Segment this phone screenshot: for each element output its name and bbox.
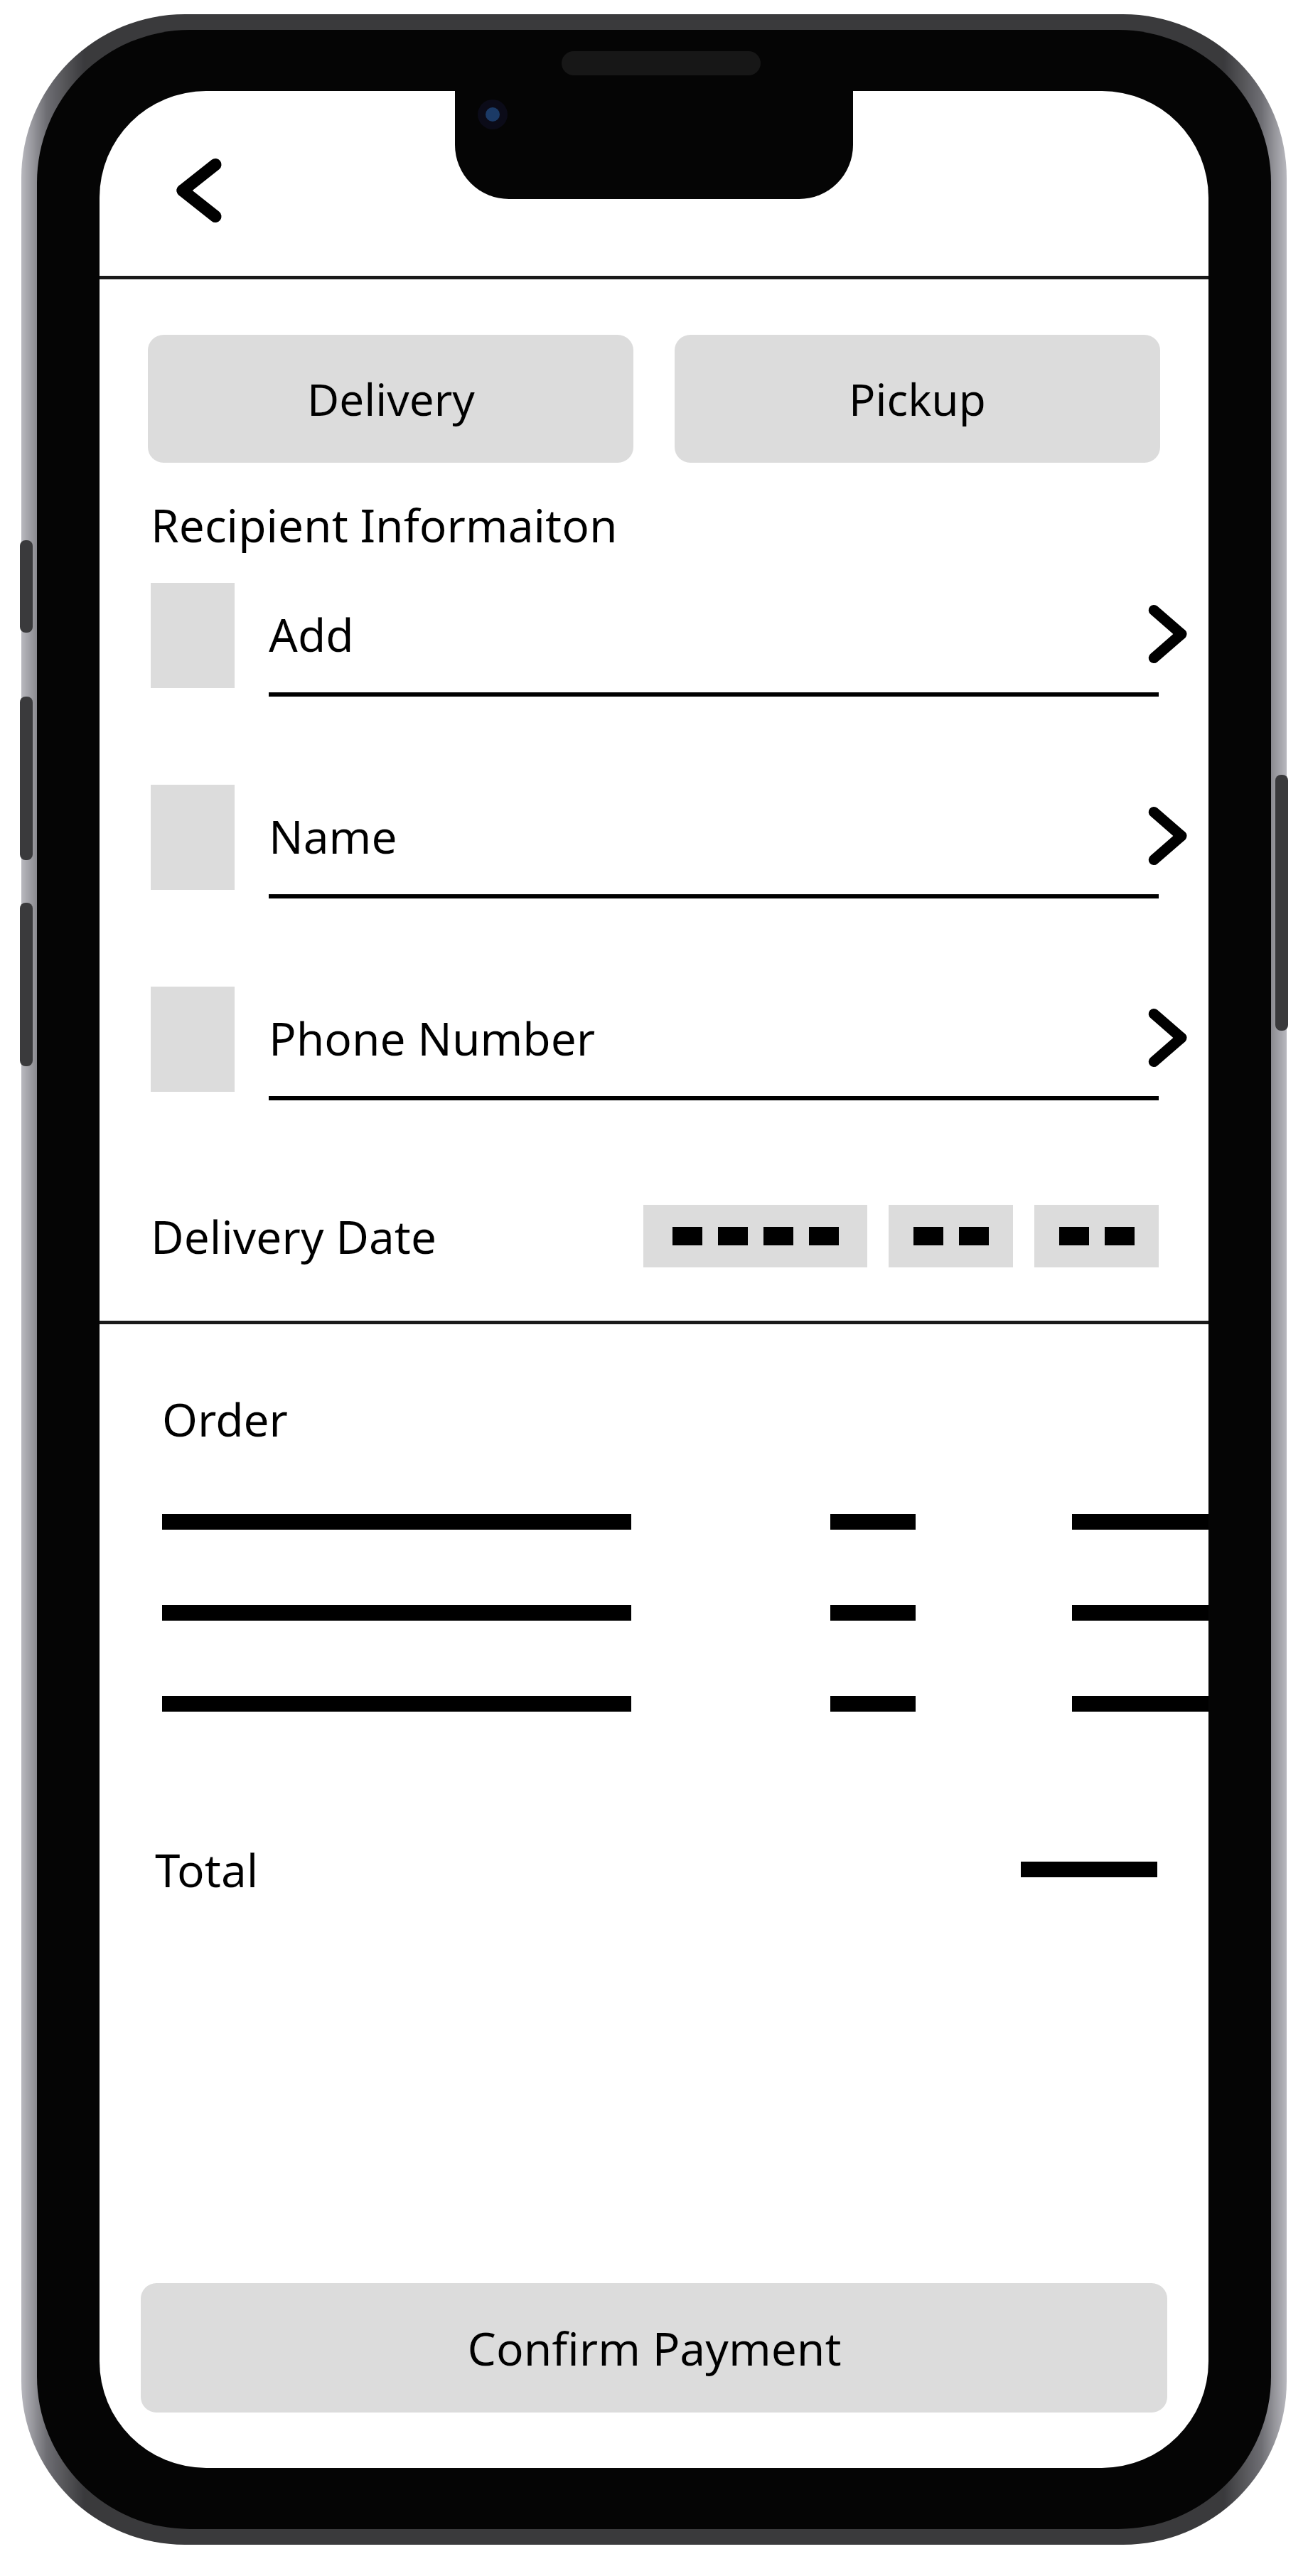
staticText: Name <box>269 805 1149 867</box>
staticText: Total <box>155 1839 259 1901</box>
staticText: Order <box>162 1388 289 1450</box>
button[interactable]: Date field <box>643 1205 867 1267</box>
button[interactable]: Phone Number <box>100 980 1208 1122</box>
button[interactable]: Back <box>151 142 247 239</box>
staticText: Add <box>269 603 1149 665</box>
button[interactable]: Name <box>100 778 1208 920</box>
button[interactable]: Pickup <box>675 335 1160 463</box>
staticText: Recipient Informaiton <box>151 494 618 556</box>
staticText: Pickup <box>849 369 986 429</box>
button[interactable]: Delivery <box>148 335 633 463</box>
staticText: Delivery Date <box>151 1206 643 1267</box>
staticText: Confirm Payment <box>467 2317 842 2379</box>
staticText: Phone Number <box>269 1007 1149 1069</box>
button[interactable]: Add <box>100 576 1208 718</box>
button[interactable]: Date field <box>889 1205 1013 1267</box>
button[interactable]: Confirm Payment <box>141 2283 1167 2413</box>
button[interactable]: Date field <box>1034 1205 1159 1267</box>
staticText: Delivery <box>307 369 475 429</box>
